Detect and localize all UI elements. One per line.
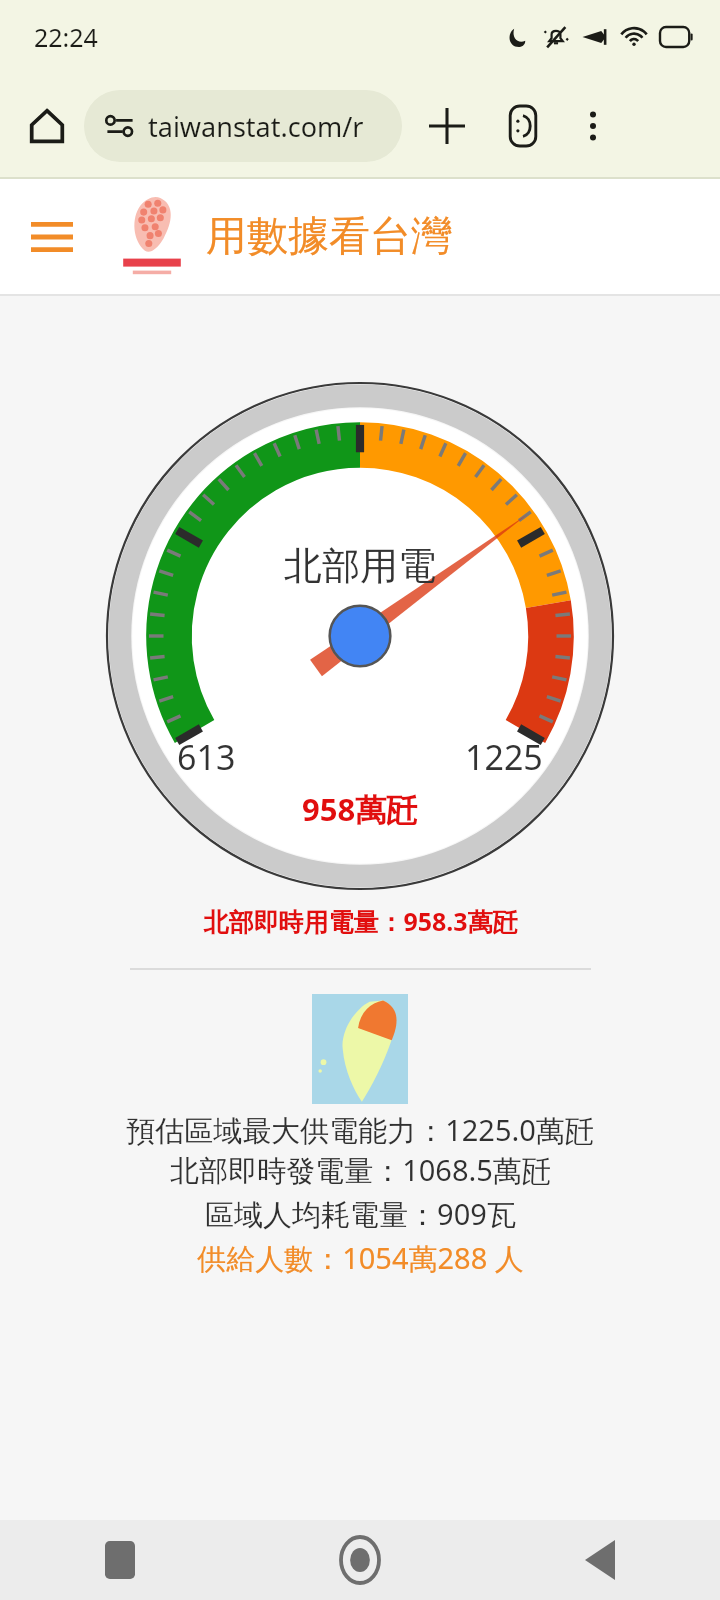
staticText: 供給人數：1054萬288 人 xyxy=(197,1238,524,1278)
staticText: 22:24 xyxy=(34,20,98,54)
staticText: 區域人均耗電量：909瓦 xyxy=(205,1194,516,1234)
staticText: 1225 xyxy=(465,734,543,780)
staticText: taiwanstat.com/r xyxy=(148,108,364,145)
button[interactable]: Tabs xyxy=(492,95,554,157)
button[interactable]: Home xyxy=(16,95,78,157)
button[interactable]: taiwanstat.com/r xyxy=(84,90,402,162)
staticText: 預估區域最大供電能力：1225.0萬瓩 xyxy=(126,1110,594,1150)
button[interactable]: Menu xyxy=(20,205,84,269)
button[interactable]: Recent apps xyxy=(0,1520,240,1600)
staticText: 613 xyxy=(177,734,236,780)
button[interactable]: 用數據看台灣 xyxy=(206,211,452,263)
staticText: 958萬瓩 xyxy=(302,788,418,830)
button[interactable]: More options xyxy=(562,95,624,157)
button[interactable]: Site logo xyxy=(120,197,184,277)
staticText: 北部即時用電量：958.3萬瓩 xyxy=(203,904,518,938)
staticText: 北部即時發電量：1068.5萬瓩 xyxy=(170,1150,551,1190)
button[interactable]: Home xyxy=(240,1520,480,1600)
button[interactable]: Back xyxy=(480,1520,720,1600)
button[interactable]: New tab xyxy=(416,95,478,157)
staticText: 北部用電 xyxy=(284,542,436,590)
